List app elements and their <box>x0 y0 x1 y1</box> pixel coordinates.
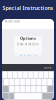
button[interactable]: Return <box>42 93 53 99</box>
button[interactable]: Key <box>31 79 36 85</box>
staticText: Add note <box>5 18 20 24</box>
button[interactable]: Key <box>20 86 25 92</box>
button[interactable]: Key <box>42 86 47 92</box>
button[interactable]: Key <box>36 86 41 92</box>
button[interactable]: Key <box>42 79 47 85</box>
button[interactable]: Shift <box>3 86 9 92</box>
button[interactable]: Key <box>47 79 52 85</box>
button[interactable]: Key <box>31 86 36 92</box>
button[interactable]: Done <box>42 66 54 69</box>
button[interactable]: Key <box>15 79 19 85</box>
staticText: Done <box>44 66 52 69</box>
staticText: Hand it to me <box>18 55 37 58</box>
button[interactable]: Space <box>14 93 42 99</box>
button[interactable]: Key <box>9 86 14 92</box>
staticText: Special Instructions <box>2 4 53 12</box>
button[interactable]: Key <box>4 79 9 85</box>
button[interactable]: Numbers <box>3 93 9 99</box>
button[interactable]: Emoji <box>9 93 14 99</box>
button[interactable]: Key <box>23 72 28 78</box>
button[interactable]: Hand it to me <box>14 54 42 59</box>
staticText: Driver Options <box>20 30 36 41</box>
button[interactable]: Key <box>20 79 25 85</box>
button[interactable]: Key <box>28 72 33 78</box>
button[interactable]: Key <box>36 79 41 85</box>
staticText: Leave at my door <box>17 42 39 46</box>
button[interactable]: Key <box>9 79 14 85</box>
button[interactable]: Delete <box>47 86 53 92</box>
